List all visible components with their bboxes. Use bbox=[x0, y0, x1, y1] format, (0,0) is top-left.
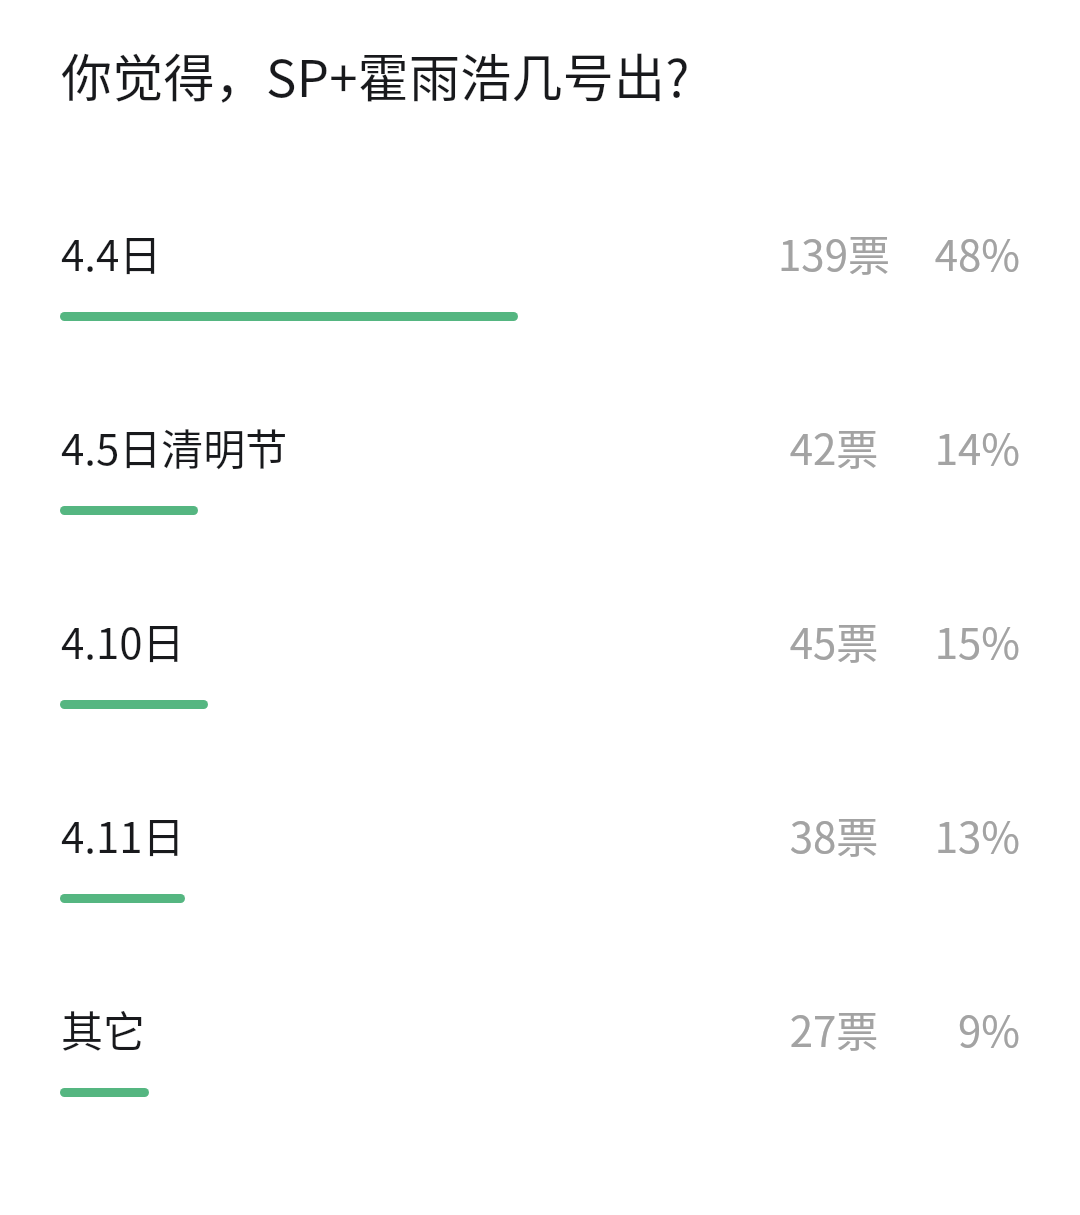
staticText: 139票 bbox=[684, 222, 984, 283]
button[interactable]: 4.4日 bbox=[0, 222, 1080, 416]
staticText: 27票 bbox=[684, 998, 984, 1059]
staticText: 你觉得，SP+霍雨浩几号出? bbox=[61, 38, 690, 112]
staticText: 15% bbox=[820, 610, 1020, 671]
button[interactable]: 4.10日 bbox=[0, 610, 1080, 804]
button[interactable]: 4.11日 bbox=[0, 804, 1080, 998]
staticText: 4.4日 bbox=[61, 222, 162, 283]
staticText: 4.10日 bbox=[61, 610, 185, 671]
staticText: 4.11日 bbox=[61, 804, 185, 865]
button[interactable]: 4.5日清明节 bbox=[0, 416, 1080, 610]
staticText: 其它 bbox=[61, 998, 146, 1059]
staticText: 14% bbox=[820, 416, 1020, 477]
staticText: 4.5日清明节 bbox=[61, 416, 288, 477]
button[interactable]: 其它 bbox=[0, 998, 1080, 1192]
staticText: 38票 bbox=[684, 804, 984, 865]
staticText: 42票 bbox=[684, 416, 984, 477]
staticText: 48% bbox=[820, 222, 1020, 283]
staticText: 9% bbox=[820, 998, 1020, 1059]
staticText: 13% bbox=[820, 804, 1020, 865]
staticText: 45票 bbox=[684, 610, 984, 671]
